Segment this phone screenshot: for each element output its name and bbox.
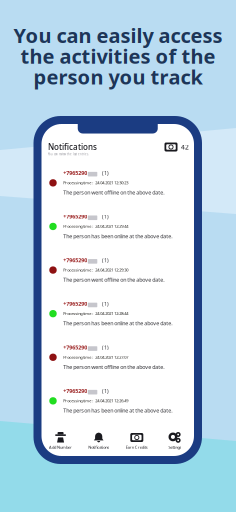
button[interactable]: +7965290 <box>48 298 187 342</box>
staticText: +7965290 <box>63 213 87 220</box>
staticText: +7965290 <box>63 169 87 176</box>
staticText: the activities of the <box>20 43 215 69</box>
button[interactable]: +7965290 <box>48 342 187 385</box>
button[interactable]: Settings <box>156 429 194 453</box>
staticText: Processing time : 24.04.2021 12:29:44 <box>63 224 128 229</box>
staticText: Add Number <box>49 445 72 450</box>
staticText: The person went offline on the above dat… <box>63 189 164 196</box>
staticText: (1) <box>102 257 109 264</box>
staticText: Processing time : 24.04.2021 12:28:44 <box>63 311 128 316</box>
staticText: The person has been online at the above … <box>63 320 172 327</box>
staticText: +7965290 <box>63 387 87 394</box>
staticText: The person has been online at the above … <box>63 233 172 240</box>
button[interactable]: +7965290 <box>48 211 187 255</box>
staticText: (1) <box>102 213 109 220</box>
staticText: (1) <box>102 300 109 307</box>
button[interactable]: +7965290 <box>48 255 187 298</box>
staticText: (1) <box>102 169 109 176</box>
staticText: Notifications <box>88 445 109 450</box>
button[interactable]: +7965290 <box>48 167 187 211</box>
staticText: Settings <box>168 445 181 450</box>
staticText: +7965290 <box>63 344 87 351</box>
staticText: The person went offline on the above dat… <box>63 363 164 370</box>
staticText: +7965290 <box>63 300 87 307</box>
staticText: The person has been online at the above … <box>63 407 172 414</box>
staticText: Processing time : 24.04.2021 12:29:30 <box>63 267 128 272</box>
button[interactable]: Notifications <box>80 429 118 453</box>
staticText: Processing time : 24.04.2021 12:26:49 <box>63 398 128 403</box>
button[interactable]: Add Number <box>41 429 80 453</box>
staticText: The person went offline on the above dat… <box>63 276 164 283</box>
staticText: You can easily access <box>13 22 222 49</box>
staticText: Earn Credits <box>126 445 148 450</box>
staticText: person you track <box>33 63 202 90</box>
staticText: Processing time : 24.04.2021 12:27:07 <box>63 354 128 360</box>
staticText: (1) <box>102 387 109 394</box>
staticText: You can review the last entries. <box>48 152 89 156</box>
staticText: 42 <box>181 143 189 151</box>
staticText: (1) <box>102 344 109 351</box>
button[interactable]: Earn Credits <box>118 429 156 453</box>
staticText: Notifications <box>48 141 97 152</box>
staticText: +7965290 <box>63 257 87 264</box>
button[interactable]: +7965290 <box>48 385 187 429</box>
staticText: Processing time : 24.04.2021 12:30:23 <box>63 180 128 185</box>
button[interactable]: 42 <box>164 141 189 151</box>
